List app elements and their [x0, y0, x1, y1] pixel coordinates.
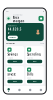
staticText: Add funds	[9, 37, 16, 38]
staticText: Good morning	[12, 14, 22, 16]
staticText: Savings	[7, 53, 17, 56]
button[interactable]: Profile	[35, 89, 46, 91]
button[interactable]: Notifications	[38, 16, 44, 21]
button[interactable]: Total balance	[6, 23, 44, 41]
staticText: 3 funds	[7, 77, 12, 79]
staticText: Total balance	[8, 25, 17, 27]
staticText: Open	[13, 81, 17, 82]
staticText: Open	[33, 61, 37, 62]
staticText: 12 plans	[7, 57, 13, 59]
staticText: Spending	[27, 53, 41, 56]
staticText: Alex Morgan	[12, 16, 24, 23]
button[interactable]: Invest	[6, 66, 24, 85]
staticText: Categories	[6, 43, 15, 44]
staticText: Open	[33, 81, 37, 82]
button[interactable]: Stats	[25, 89, 36, 91]
staticText: See all	[40, 43, 44, 44]
staticText: $4,820.50	[8, 28, 22, 35]
button[interactable]: See all	[40, 43, 44, 44]
button[interactable]: Spending	[25, 46, 44, 65]
staticText: ıl ▪	[43, 10, 44, 12]
button[interactable]: Bills	[25, 66, 44, 85]
staticText: Invest	[7, 73, 15, 76]
staticText: Open	[13, 61, 17, 62]
staticText: 9:41	[6, 10, 9, 12]
button[interactable]: Wallet	[14, 89, 25, 91]
staticText: Bills	[27, 73, 33, 76]
button[interactable]: Home	[3, 88, 14, 92]
button[interactable]: Savings	[6, 46, 24, 65]
